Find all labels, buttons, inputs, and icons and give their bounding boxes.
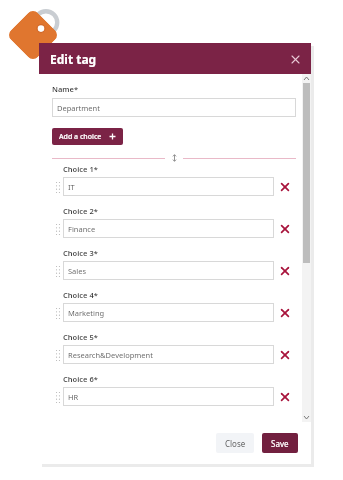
button[interactable]: Close dialog <box>285 49 305 69</box>
button[interactable]: Reorder choice 5 <box>52 346 63 364</box>
staticText: Add a choice <box>59 132 102 142</box>
staticText: Save <box>271 438 289 449</box>
staticText: IT <box>68 182 75 192</box>
staticText: Choice 3* <box>63 248 98 258</box>
button[interactable]: Remove choice 1 <box>274 178 296 196</box>
button[interactable]: Add a choice <box>52 128 123 145</box>
button[interactable]: HR <box>63 387 274 406</box>
button[interactable]: Remove choice 2 <box>274 220 296 238</box>
button[interactable]: Reorder choice 1 <box>52 178 63 196</box>
button[interactable]: Department <box>52 98 296 117</box>
button[interactable]: Research&Development <box>63 345 274 364</box>
button[interactable]: IT <box>63 177 274 196</box>
button[interactable]: Close <box>216 433 254 453</box>
staticText: Sales <box>68 266 87 276</box>
button[interactable]: Reorder choice 6 <box>52 388 63 406</box>
button[interactable]: Remove choice 3 <box>274 262 296 280</box>
staticText: Close <box>225 438 246 449</box>
button[interactable]: Remove choice 4 <box>274 304 296 322</box>
staticText: HR <box>68 392 79 402</box>
button[interactable]: Remove choice 5 <box>274 346 296 364</box>
button[interactable]: Remove choice 6 <box>274 388 296 406</box>
staticText: Edit tag <box>50 51 97 67</box>
button[interactable]: Reorder choice 4 <box>52 304 63 322</box>
button[interactable]: Reorder choice 3 <box>52 262 63 280</box>
staticText: Choice 1* <box>63 164 98 174</box>
button[interactable]: Scroll up <box>302 74 311 83</box>
staticText: Choice 6* <box>63 374 98 384</box>
button[interactable]: Save <box>262 433 298 453</box>
button[interactable]: Finance <box>63 219 274 238</box>
staticText: Department <box>57 103 100 113</box>
button[interactable]: Scroll down <box>302 413 311 422</box>
staticText: Finance <box>68 224 96 234</box>
button[interactable]: Reorder choice 2 <box>52 220 63 238</box>
staticText: Marketing <box>68 308 105 318</box>
button[interactable]: Sales <box>63 261 274 280</box>
button[interactable]: Marketing <box>63 303 274 322</box>
staticText: Choice 4* <box>63 290 98 300</box>
staticText: Name* <box>52 84 79 94</box>
staticText: Research&Development <box>68 350 153 360</box>
staticText: Choice 2* <box>63 206 98 216</box>
staticText: Choice 5* <box>63 332 98 342</box>
